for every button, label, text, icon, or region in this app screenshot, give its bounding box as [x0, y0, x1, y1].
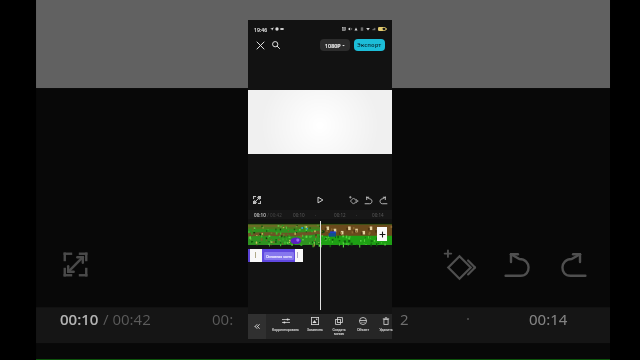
staticText: 00:: [212, 309, 234, 329]
button[interactable]: Add clip: [377, 227, 387, 241]
button[interactable]: Экспорт: [354, 39, 385, 51]
staticText: 00:14: [372, 212, 384, 218]
staticText: Заменить: [307, 327, 323, 332]
button[interactable]: Collapse toolbar: [248, 314, 266, 339]
staticText: 00:10: [60, 309, 99, 329]
staticText: ·: [315, 212, 317, 218]
staticText: Экспорт: [357, 41, 382, 49]
button[interactable]: Объект: [353, 314, 373, 339]
staticText: Корректировать: [272, 327, 299, 332]
staticText: / 00:42: [266, 212, 282, 218]
button[interactable]: Корректировать: [272, 314, 299, 339]
staticText: 1080P: [325, 42, 341, 49]
staticText: ·: [356, 212, 358, 218]
button[interactable]: Fullscreen: [251, 194, 263, 206]
button[interactable]: 1080P: [320, 39, 350, 51]
staticText: / 00:42: [99, 309, 151, 329]
button[interactable]: Undo: [362, 194, 374, 206]
button[interactable]: Close: [253, 38, 267, 52]
staticText: 00:10: [293, 212, 305, 218]
button[interactable]: Add keyframe: [347, 194, 359, 206]
staticText: 00:10: [254, 212, 266, 218]
staticText: Объект: [357, 327, 369, 332]
staticText: 2: [400, 309, 409, 329]
button[interactable]: Основная часть: [248, 249, 303, 262]
staticText: 19:46: [254, 26, 268, 33]
button[interactable]: Удалить: [376, 314, 396, 339]
button[interactable]: Заменить: [305, 314, 325, 339]
button[interactable]: Play: [314, 194, 326, 206]
staticText: Создать копию: [332, 327, 346, 336]
staticText: Удалить: [379, 327, 393, 332]
staticText: 00:14: [529, 309, 568, 329]
staticText: Основная часть: [266, 254, 293, 259]
button[interactable]: Создать копию: [329, 314, 349, 339]
staticText: ·: [466, 308, 471, 328]
button[interactable]: Search: [269, 38, 283, 52]
staticText: 00:12: [334, 212, 346, 218]
button[interactable]: Redo: [377, 194, 389, 206]
